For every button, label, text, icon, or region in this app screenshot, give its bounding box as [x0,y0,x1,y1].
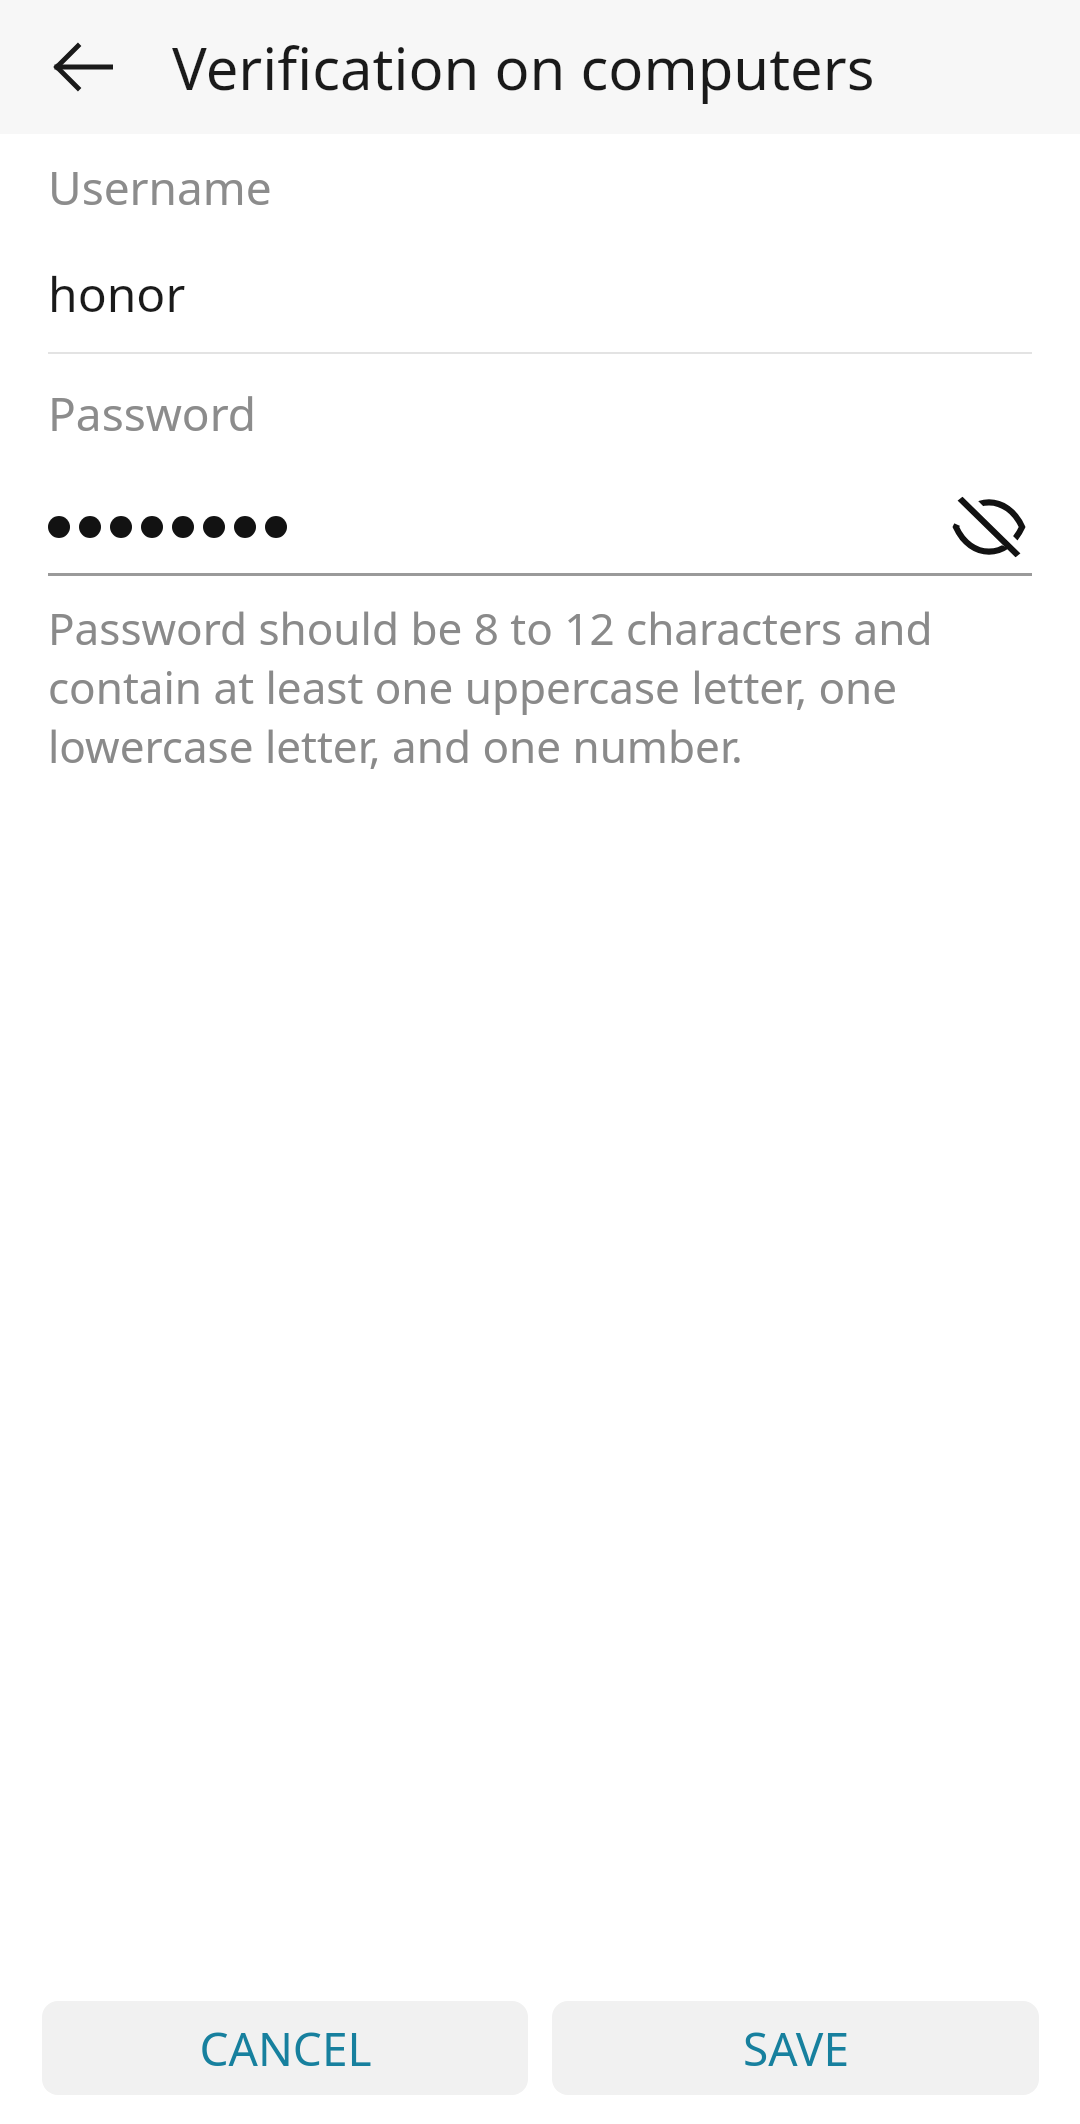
button[interactable] [48,491,946,563]
staticText: honor [48,261,186,326]
staticText: Password should be 8 to 12 characters an… [48,598,1032,776]
button[interactable]: SAVE [552,2001,1039,2095]
staticText: SAVE [743,2017,849,2080]
staticText: Verification on computers [172,28,875,107]
staticText: Password [48,382,257,445]
button[interactable]: CANCEL [42,2001,528,2095]
button[interactable]: Back [30,12,140,122]
button[interactable]: Hide password [946,491,1032,563]
button[interactable]: Username [48,156,1032,354]
staticText: Username [48,156,272,219]
staticText: CANCEL [199,2017,372,2080]
